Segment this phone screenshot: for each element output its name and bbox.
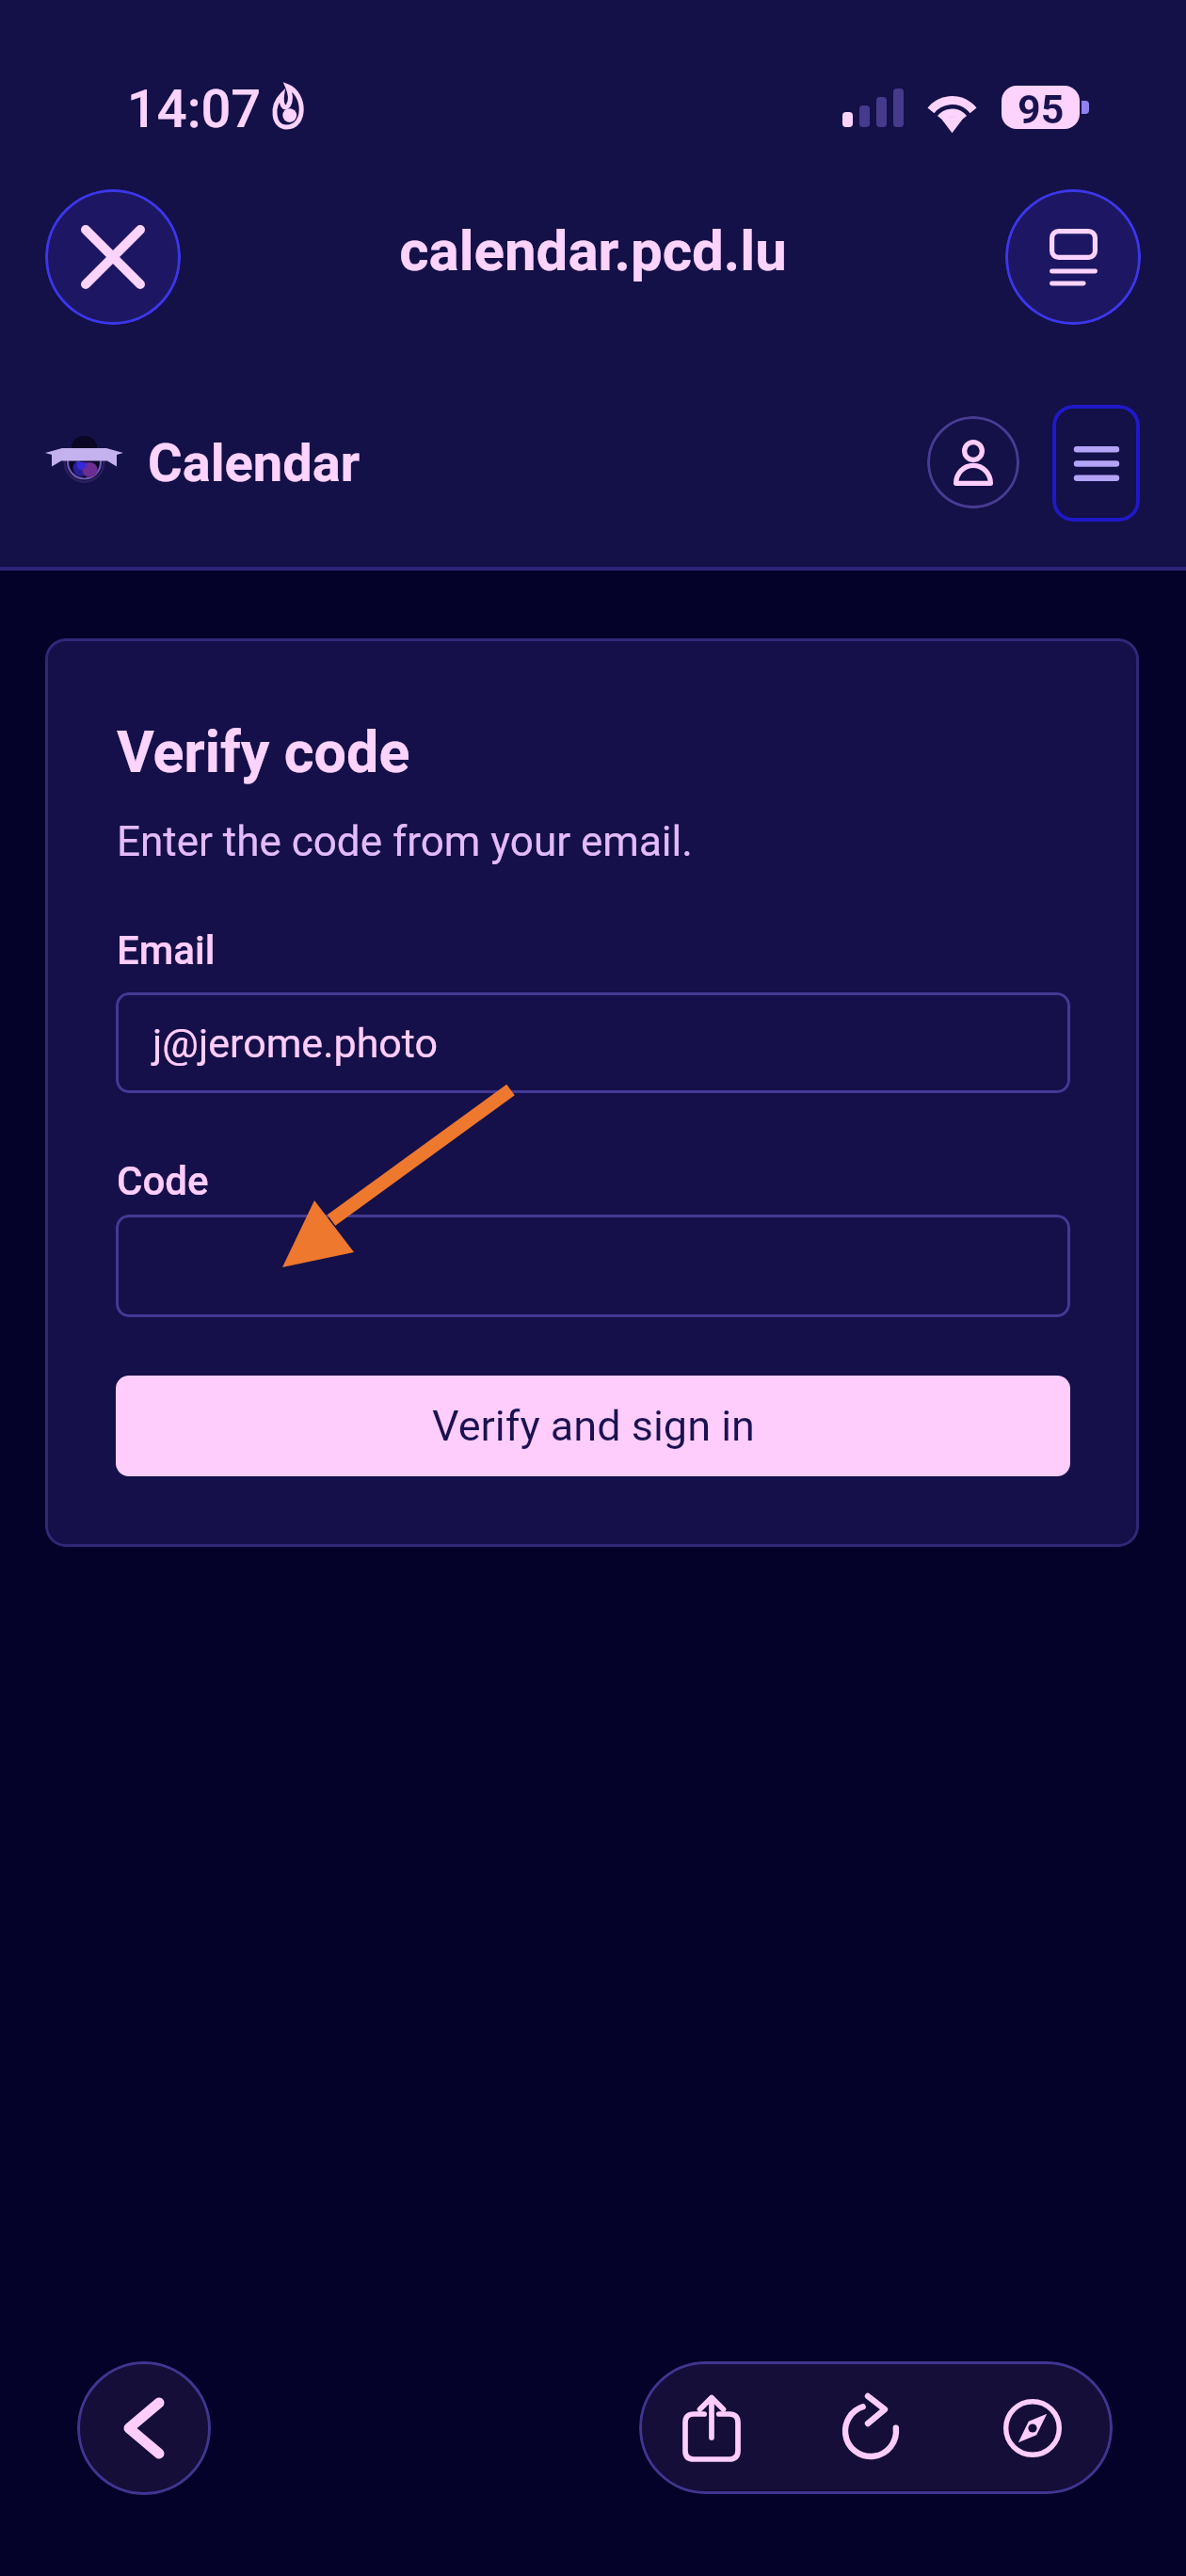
staticText: 14:07 <box>127 78 262 140</box>
button[interactable]: Open in browser <box>976 2372 1089 2485</box>
button[interactable]: Close <box>45 189 181 325</box>
button[interactable]: Reader view <box>1005 189 1141 325</box>
button[interactable]: Reload <box>814 2372 927 2485</box>
button[interactable]: Account <box>927 416 1019 508</box>
staticText: j@jerome.photo <box>152 1020 439 1067</box>
button[interactable]: Share <box>655 2372 768 2485</box>
staticText: Verify and sign in <box>432 1401 755 1451</box>
staticText: Email <box>117 927 216 974</box>
button[interactable]: Verify and sign in <box>116 1376 1070 1476</box>
button[interactable]: Menu <box>1052 405 1140 522</box>
button[interactable]: j@jerome.photo <box>116 992 1070 1093</box>
staticText: Calendar <box>148 432 361 494</box>
staticText: Verify code <box>117 718 410 785</box>
staticText: Code <box>117 1158 209 1204</box>
staticText: 95 <box>1018 86 1065 129</box>
button[interactable]: Back <box>77 2361 211 2495</box>
button[interactable]: Calendar <box>45 407 336 520</box>
staticText: Enter the code from your email. <box>117 817 693 866</box>
button[interactable] <box>116 1215 1070 1317</box>
staticText: calendar.pcd.lu <box>0 217 1186 283</box>
